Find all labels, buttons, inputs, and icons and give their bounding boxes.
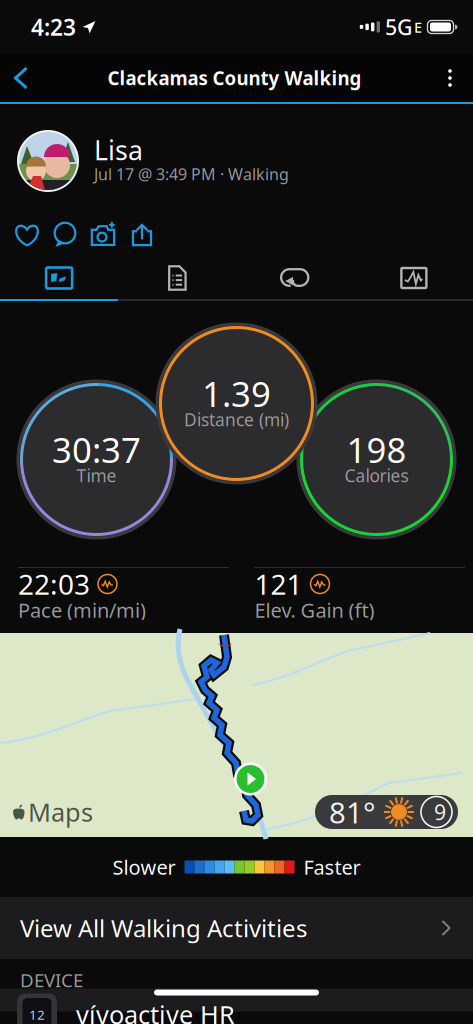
staticText: 12	[29, 1006, 45, 1023]
button[interactable]: View All Walking Activities	[0, 897, 473, 959]
button[interactable]: Comment	[46, 221, 83, 249]
staticText: Elev. Gain (ft)	[254, 597, 374, 623]
staticText: Jul 17 @ 3:49 PM · Walking	[94, 163, 289, 185]
staticText: Clackamas County Walking	[107, 66, 361, 90]
staticText: Lisa	[94, 132, 143, 168]
staticText: vívoactive HR	[76, 998, 235, 1024]
button[interactable]: Share	[123, 221, 161, 249]
staticText: Faster	[303, 854, 360, 880]
staticText: Time	[76, 464, 116, 487]
button[interactable]: Map	[0, 255, 118, 301]
staticText: 81°	[329, 792, 376, 831]
staticText: Calories	[344, 464, 408, 487]
staticText: 121	[254, 565, 302, 603]
staticText: 4:23	[31, 12, 76, 42]
staticText: E	[414, 17, 422, 37]
button[interactable]: Laps	[236, 255, 355, 301]
button[interactable]: More options	[427, 54, 473, 102]
staticText: 198	[346, 426, 406, 472]
button[interactable]: Add photo	[83, 221, 123, 249]
staticText: Pace (min/mi)	[18, 597, 146, 623]
staticText: Slower	[112, 854, 175, 880]
staticText: 5G	[385, 13, 413, 41]
staticText: 9	[434, 798, 446, 826]
button[interactable]: Back	[0, 54, 42, 102]
staticText: Maps	[28, 795, 93, 829]
button[interactable]: Like	[8, 221, 46, 249]
staticText: 22:03	[18, 565, 90, 603]
button[interactable]: Heart rate	[355, 255, 473, 301]
staticText: DEVICE	[20, 968, 83, 992]
staticText: 30:37	[52, 426, 141, 472]
staticText: View All Walking Activities	[20, 912, 307, 944]
button[interactable]: Details	[118, 255, 236, 301]
staticText: 1.39	[202, 370, 271, 416]
staticText: Distance (mi)	[184, 408, 289, 431]
